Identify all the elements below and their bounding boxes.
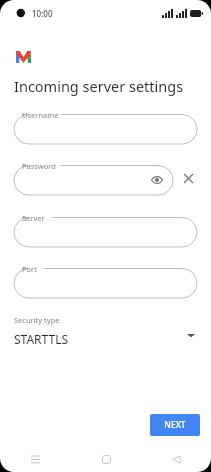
staticText: STARTTLS	[14, 331, 69, 347]
button[interactable]: Username	[14, 110, 197, 144]
staticText: Server	[22, 213, 45, 223]
button[interactable]: Clear password	[179, 169, 197, 187]
button[interactable]: Port	[14, 264, 197, 298]
button[interactable]: Show password	[149, 172, 165, 188]
staticText: 10:00	[32, 8, 53, 19]
button[interactable]: Server	[14, 213, 197, 247]
button[interactable]: Password	[14, 161, 173, 195]
staticText: Username	[22, 110, 59, 120]
button[interactable]: Back	[141, 446, 211, 472]
button[interactable]: Security type	[14, 315, 197, 347]
staticText: Password	[22, 161, 56, 171]
button[interactable]: NEXT	[150, 414, 200, 436]
button[interactable]: Recent apps	[0, 446, 71, 472]
staticText: Incoming server settings	[14, 76, 184, 96]
staticText: NEXT	[164, 419, 186, 431]
button[interactable]: Home	[71, 446, 141, 472]
staticText: Port	[22, 264, 37, 274]
staticText: Security type	[14, 315, 60, 325]
